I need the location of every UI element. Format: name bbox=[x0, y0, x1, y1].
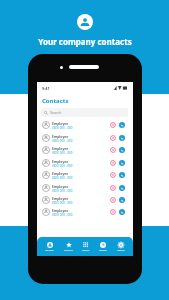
button[interactable]: Recents bbox=[98, 240, 108, 254]
button[interactable]: Video call bbox=[110, 147, 116, 153]
staticText: Employee bbox=[52, 146, 69, 151]
button[interactable]: Call bbox=[119, 209, 125, 215]
staticText: Your company contacts bbox=[38, 36, 132, 47]
button[interactable]: Employee bbox=[37, 157, 133, 169]
staticText: Employee bbox=[52, 121, 69, 126]
staticText: Search bbox=[50, 110, 62, 115]
staticText: Recents bbox=[99, 249, 107, 252]
button[interactable]: Favorites bbox=[63, 240, 74, 254]
button[interactable]: Employee bbox=[37, 182, 133, 194]
button[interactable]: Employee bbox=[37, 169, 133, 181]
staticText: (000) 000 - 000 bbox=[52, 151, 73, 155]
staticText: Employee bbox=[52, 208, 69, 213]
staticText: Settings bbox=[117, 249, 125, 252]
button[interactable]: Call bbox=[119, 147, 125, 153]
button[interactable]: Settings bbox=[116, 240, 126, 254]
button[interactable]: Search bbox=[41, 108, 128, 117]
button[interactable]: Employee bbox=[37, 206, 133, 218]
button[interactable]: Employee bbox=[37, 132, 133, 144]
staticText: (000) 000 - 000 bbox=[52, 213, 73, 217]
staticText: (000) 000 - 000 bbox=[52, 139, 73, 143]
button[interactable]: Call bbox=[119, 172, 125, 178]
button[interactable]: Employee bbox=[37, 119, 133, 131]
button[interactable]: Call bbox=[119, 122, 125, 128]
staticText: Employee bbox=[52, 134, 69, 139]
staticText: Favorites bbox=[64, 249, 73, 252]
button[interactable]: Call bbox=[119, 135, 125, 141]
button[interactable]: Video call bbox=[110, 185, 116, 191]
button[interactable]: Video call bbox=[110, 172, 116, 178]
button[interactable]: Contacts bbox=[44, 240, 55, 254]
button[interactable]: Video call bbox=[110, 209, 116, 215]
staticText: (000) 000 - 000 bbox=[52, 201, 73, 205]
staticText: Employee bbox=[52, 171, 69, 176]
button[interactable]: Call bbox=[119, 185, 125, 191]
button[interactable]: Video call bbox=[110, 197, 116, 203]
button[interactable]: Call bbox=[119, 197, 125, 203]
staticText: (000) 000 - 000 bbox=[52, 164, 73, 168]
button[interactable]: Video call bbox=[110, 135, 116, 141]
staticText: Contacts bbox=[42, 97, 69, 105]
staticText: (000) 000 - 000 bbox=[52, 176, 73, 180]
staticText: 9:41 bbox=[42, 86, 50, 91]
staticText: Employee bbox=[52, 159, 69, 164]
button[interactable]: Video call bbox=[110, 160, 116, 166]
staticText: (000) 000 - 000 bbox=[52, 126, 73, 130]
button[interactable]: Call bbox=[119, 160, 125, 166]
button[interactable]: Video call bbox=[110, 122, 116, 128]
staticText: Keypad bbox=[82, 249, 90, 252]
staticText: Employee bbox=[52, 196, 69, 201]
staticText: (000) 000 - 000 bbox=[52, 189, 73, 193]
button[interactable]: Employee bbox=[37, 194, 133, 206]
staticText: Contacts bbox=[45, 249, 54, 252]
staticText: Employee bbox=[52, 184, 69, 189]
button[interactable]: Employee bbox=[37, 144, 133, 156]
button[interactable]: Keypad bbox=[81, 240, 91, 254]
